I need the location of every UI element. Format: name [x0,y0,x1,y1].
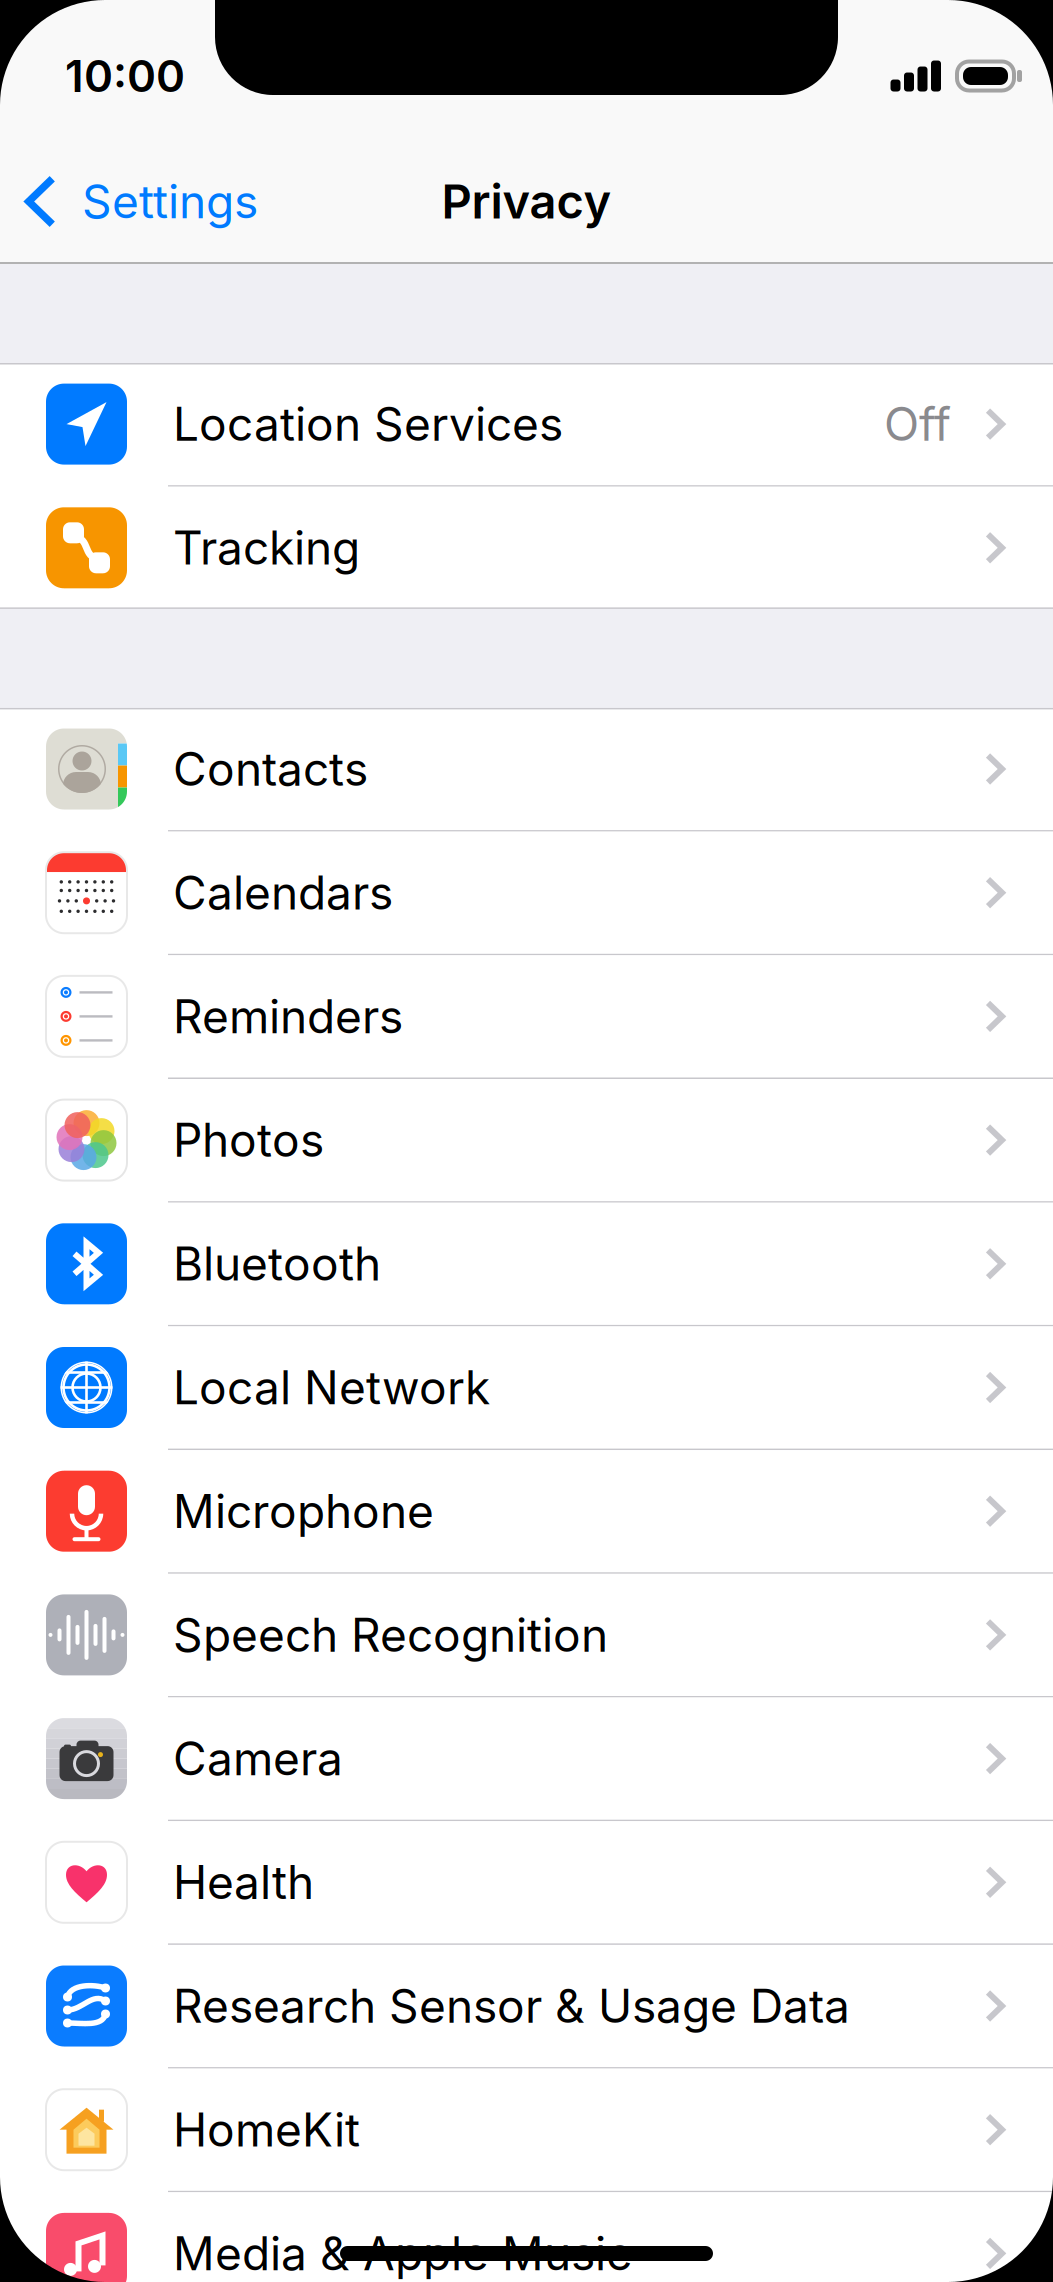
staticText: Speech Recognition [173,1607,608,1663]
staticText: Location Services [173,396,563,452]
staticText: Calendars [173,865,393,921]
staticText: Health [173,1854,314,1910]
staticText: Settings [82,174,258,229]
button[interactable]: Research Sensor & Usage Data [0,1945,1053,2067]
button[interactable]: Settings [0,133,278,264]
button[interactable]: HomeKit [0,2069,1053,2191]
button[interactable]: Contacts [0,708,1053,830]
staticText: 10:00 [65,49,185,103]
button[interactable]: Tracking [0,487,1053,609]
button[interactable]: Microphone [0,1450,1053,1572]
button[interactable]: Reminders [0,955,1053,1077]
button[interactable]: Speech Recognition [0,1574,1053,1696]
staticText: HomeKit [173,2102,360,2158]
staticText: Media & Apple Music [173,2226,632,2281]
staticText: Contacts [173,741,368,797]
button[interactable]: Photos [0,1079,1053,1201]
button[interactable]: Bluetooth [0,1203,1053,1325]
staticText: Photos [173,1112,324,1168]
staticText: Research Sensor & Usage Data [173,1978,850,2034]
staticText: Microphone [173,1483,434,1539]
button[interactable]: Calendars [0,832,1053,954]
button[interactable]: Media & Apple Music [0,2192,1053,2282]
button[interactable]: Local Network [0,1326,1053,1449]
staticText: Off [884,396,951,452]
staticText: Bluetooth [173,1236,381,1292]
button[interactable]: Location Services [0,363,1053,485]
staticText: Local Network [173,1360,490,1415]
staticText: Privacy [441,173,611,230]
staticText: Reminders [173,989,403,1044]
button[interactable]: Camera [0,1697,1053,1820]
staticText: Tracking [173,520,360,576]
button[interactable]: Health [0,1821,1053,1943]
staticText: Camera [173,1731,343,1786]
